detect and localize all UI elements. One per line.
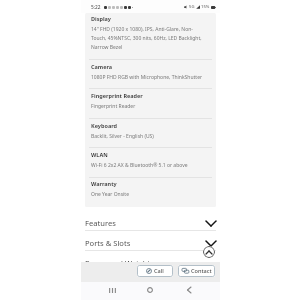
button[interactable]: Scroll to top	[203, 246, 215, 258]
staticText: Camera	[91, 63, 113, 70]
button[interactable]: Ports & Slots	[81, 231, 220, 251]
button[interactable]: Recent apps	[105, 283, 119, 297]
staticText: 15%	[201, 4, 210, 10]
staticText: Backlit, Silver - English (US)	[91, 133, 154, 140]
button[interactable]: Back	[182, 283, 196, 297]
staticText: 1080P FHD RGB with Microphone, ThinkShut…	[91, 74, 203, 81]
button[interactable]: Contact	[178, 265, 215, 277]
staticText: Wi-Fi 6 2x2 AX & Bluetooth® 5.1 or above	[91, 162, 188, 169]
button[interactable]: Features	[81, 211, 220, 231]
staticText: 5:22	[91, 4, 101, 11]
staticText: 5G	[189, 4, 195, 10]
staticText: Keyboard	[91, 122, 117, 129]
staticText: Display	[91, 15, 111, 22]
button[interactable]: Home	[143, 283, 157, 297]
staticText: WLAN	[91, 151, 108, 158]
staticText: Features	[85, 218, 116, 228]
staticText: Warranty	[91, 180, 117, 187]
staticText: Call	[154, 267, 164, 275]
staticText: Power and Weight	[85, 258, 151, 268]
staticText: Fingerprint Reader	[91, 103, 136, 110]
staticText: Ports & Slots	[85, 238, 131, 248]
button[interactable]: Call	[137, 265, 173, 277]
staticText: Fingerprint Reader	[91, 92, 143, 99]
staticText: 14" FHD (1920 x 1080), IPS, Anti-Glare, …	[91, 26, 202, 51]
staticText: One Year Onsite	[91, 191, 129, 198]
staticText: Contact	[191, 267, 212, 275]
